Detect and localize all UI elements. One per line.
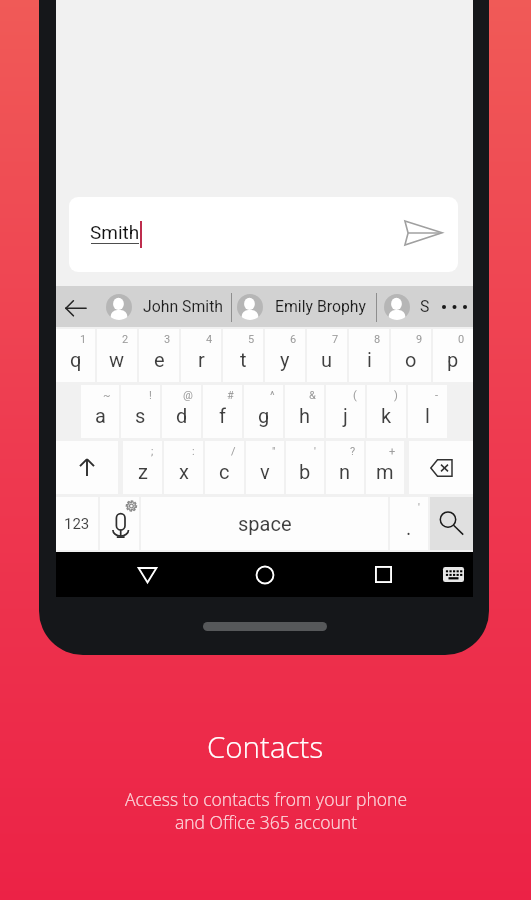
button[interactable]: Backspace — [409, 441, 473, 494]
staticText: 9 — [416, 333, 423, 346]
button[interactable]: Back — [117, 552, 177, 597]
button[interactable]: Back — [56, 286, 101, 327]
staticText: c — [219, 460, 230, 483]
staticText: f — [219, 404, 226, 427]
staticText: " — [272, 445, 276, 458]
staticText: 7 — [332, 333, 339, 346]
staticText: w — [109, 348, 125, 371]
button[interactable]: u — [307, 329, 347, 382]
staticText: Contacts — [207, 726, 324, 766]
staticText: 123 — [64, 515, 90, 533]
staticText: j — [343, 404, 348, 427]
staticText: & — [309, 389, 316, 402]
button[interactable]: o — [391, 329, 431, 382]
button[interactable]: r — [181, 329, 221, 382]
button[interactable]: e — [139, 329, 179, 382]
staticText: r — [198, 348, 205, 371]
button[interactable]: m — [366, 441, 404, 494]
button[interactable]: b — [286, 441, 324, 494]
button[interactable]: Home — [235, 552, 295, 597]
staticText: 6 — [290, 333, 297, 346]
staticText: e — [154, 348, 165, 371]
button[interactable]: Search — [430, 497, 473, 550]
staticText: @ — [183, 389, 193, 402]
button[interactable]: d — [162, 385, 201, 438]
button[interactable]: space — [141, 497, 388, 550]
button[interactable]: s — [121, 385, 160, 438]
staticText: u — [321, 348, 333, 371]
button[interactable]: q — [56, 329, 95, 382]
staticText: y — [280, 348, 290, 371]
staticText: ' — [314, 445, 316, 458]
staticText: 0 — [458, 333, 465, 346]
staticText: ! — [149, 389, 152, 402]
button[interactable]: w — [97, 329, 137, 382]
staticText: Emily Brophy — [275, 297, 367, 316]
staticText: . — [406, 516, 412, 539]
staticText: m — [376, 460, 394, 483]
staticText: h — [299, 404, 311, 427]
button[interactable]: y — [265, 329, 305, 382]
button[interactable]: t — [223, 329, 263, 382]
staticText: : — [192, 445, 195, 458]
button[interactable]: i — [349, 329, 389, 382]
staticText: ( — [353, 389, 357, 402]
staticText: John Smith — [143, 297, 224, 316]
button[interactable]: Emily Brophy — [229, 286, 372, 327]
button[interactable]: More contacts — [436, 286, 473, 327]
button[interactable]: John Smith — [98, 286, 224, 327]
staticText: z — [138, 460, 148, 483]
staticText: 2 — [122, 333, 129, 346]
staticText: q — [70, 348, 82, 371]
button[interactable]: x — [164, 441, 203, 494]
staticText: space — [238, 512, 292, 535]
button[interactable]: h — [285, 385, 324, 438]
staticText: g — [258, 404, 270, 427]
staticText: i — [367, 348, 372, 371]
staticText: + — [389, 445, 396, 458]
button[interactable]: k — [367, 385, 406, 438]
button[interactable]: a — [81, 385, 119, 438]
staticText: 8 — [374, 333, 381, 346]
button[interactable]: v — [246, 441, 284, 494]
button[interactable]: l — [408, 385, 447, 438]
staticText: ; — [151, 445, 154, 458]
button[interactable]: Send — [387, 209, 439, 260]
staticText: x — [179, 460, 189, 483]
staticText: ? — [350, 445, 356, 458]
staticText: 1 — [80, 333, 87, 346]
button[interactable]: c — [205, 441, 244, 494]
staticText: ^ — [270, 389, 275, 402]
staticText: t — [240, 348, 247, 371]
button[interactable]: Switch keyboard — [428, 552, 479, 597]
button[interactable]: f — [203, 385, 242, 438]
staticText: d — [176, 404, 188, 427]
staticText: a — [95, 404, 106, 427]
button[interactable]: n — [326, 441, 364, 494]
staticText: b — [299, 460, 311, 483]
staticText: 4 — [206, 333, 213, 346]
staticText: ) — [394, 389, 398, 402]
staticText: # — [227, 389, 234, 402]
staticText: - — [435, 389, 439, 402]
button[interactable]: Smith — [69, 197, 458, 272]
button[interactable]: j — [326, 385, 365, 438]
button[interactable]: Voice input — [100, 497, 139, 550]
staticText: 5 — [248, 333, 255, 346]
staticText: s — [135, 404, 146, 427]
button[interactable]: z — [123, 441, 162, 494]
staticText: l — [425, 404, 430, 427]
button[interactable]: Shift — [56, 441, 118, 494]
button[interactable]: p — [433, 329, 473, 382]
staticText: v — [260, 460, 270, 483]
staticText: o — [405, 348, 417, 371]
button[interactable]: 123 — [56, 497, 98, 550]
staticText: Smith — [90, 221, 140, 243]
button[interactable]: g — [244, 385, 283, 438]
button[interactable]: . — [390, 497, 428, 550]
staticText: Access to contacts from your phone and O… — [125, 787, 407, 834]
button[interactable]: S — [376, 286, 429, 327]
staticText: p — [447, 348, 459, 371]
button[interactable]: Recent apps — [353, 552, 413, 597]
staticText: ~ — [103, 389, 111, 402]
